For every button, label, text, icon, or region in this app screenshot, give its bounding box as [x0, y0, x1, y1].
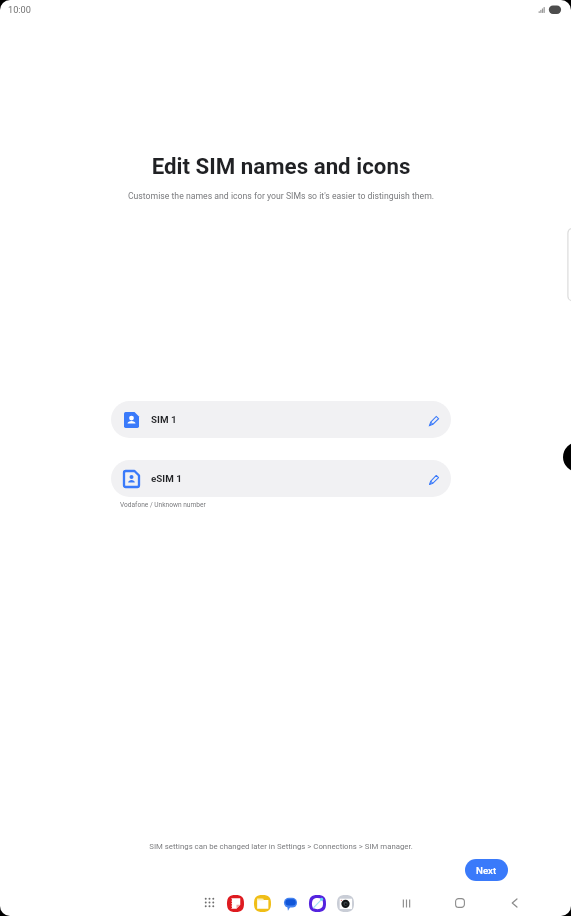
button[interactable]: Internet	[309, 895, 326, 912]
staticText: Edit SIM names and icons	[0, 153, 562, 179]
button[interactable]: eSIM 1	[111, 460, 451, 497]
staticText: SIM 1	[151, 414, 177, 425]
button[interactable]: Assistant	[563, 442, 571, 472]
staticText: Customise the names and icons for your S…	[0, 191, 562, 201]
staticText: SIM settings can be changed later in Set…	[0, 842, 562, 851]
staticText: Next	[476, 865, 497, 876]
button[interactable]: Back	[501, 890, 527, 916]
button[interactable]: Samsung Notes	[227, 895, 244, 912]
button[interactable]: Recents	[393, 890, 419, 916]
button[interactable]: My Files	[254, 895, 271, 912]
button[interactable]: Next	[465, 859, 508, 881]
button[interactable]: Edit name	[419, 405, 449, 435]
button[interactable]: Home	[447, 890, 473, 916]
button[interactable]: Apps	[203, 896, 216, 909]
staticText: 10:00	[8, 4, 31, 15]
staticText: Vodafone / Unknown number	[120, 501, 206, 509]
button[interactable]: SIM 1	[111, 401, 451, 438]
button[interactable]: Messages	[282, 895, 299, 912]
button[interactable]: Edit name	[419, 464, 449, 494]
button[interactable]: Camera	[337, 895, 354, 912]
staticText: eSIM 1	[151, 473, 182, 484]
